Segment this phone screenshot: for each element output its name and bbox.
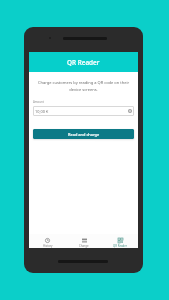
staticText: Amount bbox=[33, 100, 44, 104]
staticText: QR Reader bbox=[67, 58, 100, 67]
button[interactable]: History bbox=[29, 234, 66, 248]
staticText: History bbox=[43, 244, 53, 248]
staticText: Charge customers by reading a QR code on… bbox=[33, 80, 134, 92]
button[interactable]: Read and charge bbox=[33, 129, 134, 139]
button[interactable]: Charge bbox=[66, 234, 102, 248]
staticText: 10,00 € bbox=[35, 109, 49, 114]
button[interactable]: QR Reader bbox=[102, 234, 138, 248]
staticText: QR Reader bbox=[113, 244, 127, 248]
staticText: Read and charge bbox=[68, 132, 100, 137]
staticText: Charge bbox=[79, 244, 89, 248]
